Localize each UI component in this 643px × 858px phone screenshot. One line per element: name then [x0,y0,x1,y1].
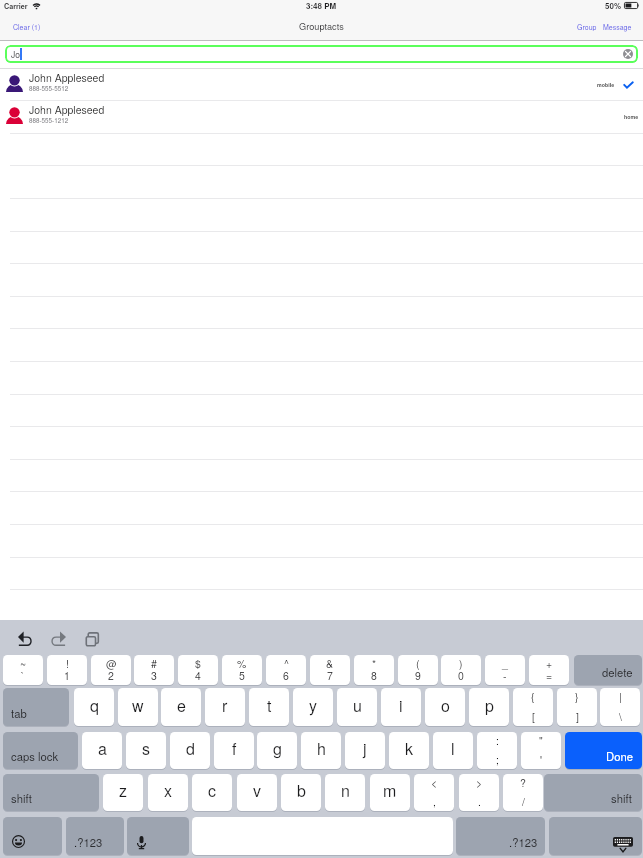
button[interactable]: > [459,774,499,811]
button[interactable]: z [103,774,143,811]
button[interactable]: d [170,732,210,769]
button[interactable]: o [425,688,465,726]
button[interactable]: b [281,774,321,811]
button[interactable]: Undo [18,634,32,646]
button[interactable]: ? [503,774,543,811]
button[interactable]: % [222,655,262,685]
button[interactable]: k [389,732,429,769]
staticText: s [142,737,151,760]
button[interactable] [0,491,643,524]
button[interactable]: ~ [3,655,43,685]
button[interactable]: r [205,688,245,726]
button[interactable] [0,557,643,590]
button[interactable]: l [433,732,473,769]
button[interactable]: Group [574,17,600,37]
button[interactable]: & [310,655,350,685]
button[interactable]: John Appleseed [0,68,643,101]
staticText: 888-555-5512 [29,84,69,93]
button[interactable]: $ [178,655,218,685]
button[interactable]: m [370,774,410,811]
button[interactable]: y [293,688,333,726]
button[interactable]: Emoji keyboard [3,817,62,855]
button[interactable] [0,133,643,166]
button[interactable]: x [148,774,188,811]
staticText: Group [577,22,597,32]
button[interactable]: : [477,732,517,769]
button[interactable]: v [237,774,277,811]
staticText: a [98,737,107,760]
staticText: z [119,779,128,802]
staticText: d [186,737,195,760]
button[interactable]: a [82,732,122,769]
button[interactable]: Clear (1) [0,19,51,39]
button[interactable]: Hide keyboard [549,817,642,855]
button[interactable]: q [74,688,114,726]
button[interactable]: i [381,688,421,726]
staticText: 5 [239,668,245,683]
button[interactable]: shift [544,774,642,811]
button[interactable]: Done [565,732,642,769]
button[interactable]: ) [441,655,481,685]
button[interactable]: @ [91,655,131,685]
button[interactable] [0,524,643,557]
staticText: q [90,694,99,717]
button[interactable]: ^ [266,655,306,685]
button[interactable]: e [161,688,201,726]
button[interactable]: * [354,655,394,685]
other: Dictation [127,817,189,855]
button[interactable]: " [521,732,561,769]
button[interactable] [0,459,643,492]
button[interactable] [0,263,643,296]
button[interactable]: John Appleseed [0,100,643,133]
button[interactable]: tab [3,688,69,726]
button[interactable]: ! [47,655,87,685]
button[interactable]: .?123 [456,817,545,855]
button[interactable] [0,394,643,427]
button[interactable]: _ [485,655,525,685]
staticText: * [372,656,377,671]
button[interactable]: Jo [5,45,638,63]
button[interactable]: | [600,688,640,726]
button[interactable]: w [118,688,158,726]
button[interactable]: # [134,655,174,685]
staticText: c [208,779,217,802]
button[interactable]: p [469,688,509,726]
button[interactable]: Redo [51,634,66,646]
staticText: k [405,737,414,760]
button[interactable]: caps lock [3,732,78,769]
button[interactable]: c [192,774,232,811]
button[interactable] [0,296,643,329]
button[interactable] [0,165,643,198]
button[interactable]: g [257,732,297,769]
staticText: Message [603,22,632,32]
button[interactable]: } [557,688,597,726]
button[interactable] [0,426,643,459]
staticText: shift [611,790,633,806]
button[interactable] [0,328,643,361]
button[interactable]: + [529,655,569,685]
button[interactable]: n [325,774,365,811]
button[interactable]: shift [3,774,99,811]
staticText: Grouptacts [299,19,344,32]
button[interactable]: .?123 [66,817,124,855]
button[interactable] [0,198,643,231]
button[interactable] [0,231,643,264]
button[interactable]: < [414,774,454,811]
button[interactable]: f [214,732,254,769]
button[interactable]: j [345,732,385,769]
button[interactable]: ( [398,655,438,685]
button[interactable]: Message [600,17,643,37]
staticText: 3 [151,668,157,683]
button[interactable]: Dictation [127,817,189,855]
button[interactable]: t [249,688,289,726]
button[interactable]: Clear search text [623,49,633,59]
button[interactable]: { [513,688,553,726]
button[interactable]: s [126,732,166,769]
staticText: 4 [195,668,201,683]
button[interactable] [0,361,643,394]
button[interactable]: Paste [86,632,100,646]
button[interactable]: h [301,732,341,769]
button[interactable]: u [337,688,377,726]
button[interactable]: delete [574,655,642,685]
